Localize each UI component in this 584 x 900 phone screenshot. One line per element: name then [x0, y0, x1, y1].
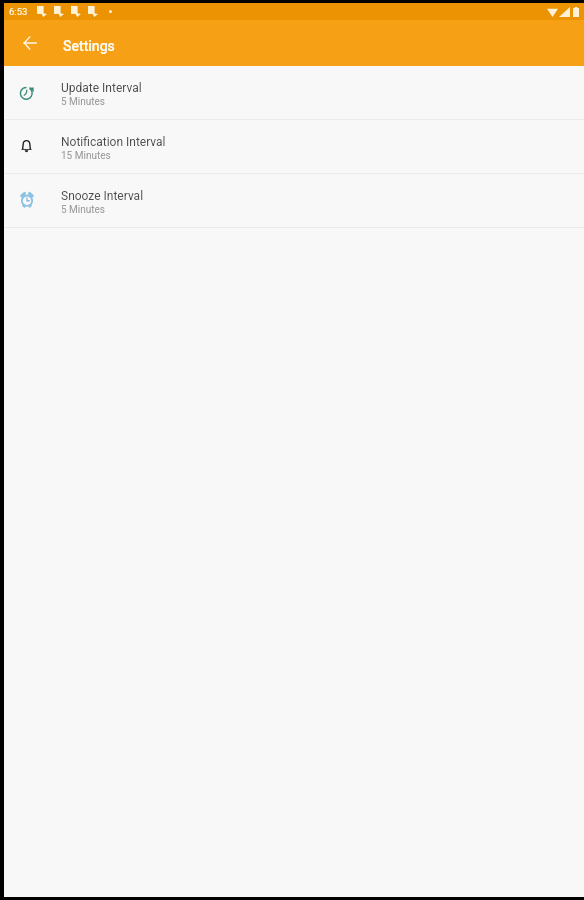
staticText: 5 Minutes — [61, 204, 106, 216]
staticText: 15 Minutes — [61, 150, 111, 162]
staticText: Notification Interval — [61, 135, 166, 149]
button[interactable]: Back — [12, 25, 48, 61]
staticText: 6:53 — [9, 6, 28, 17]
button[interactable]: Notification Interval — [4, 120, 584, 173]
button[interactable]: Snooze Interval — [4, 174, 584, 227]
staticText: Snooze Interval — [61, 189, 144, 203]
staticText: 5 Minutes — [61, 96, 106, 108]
staticText: Settings — [63, 38, 115, 54]
staticText: Update Interval — [61, 81, 142, 95]
button[interactable]: Update Interval — [4, 66, 584, 119]
